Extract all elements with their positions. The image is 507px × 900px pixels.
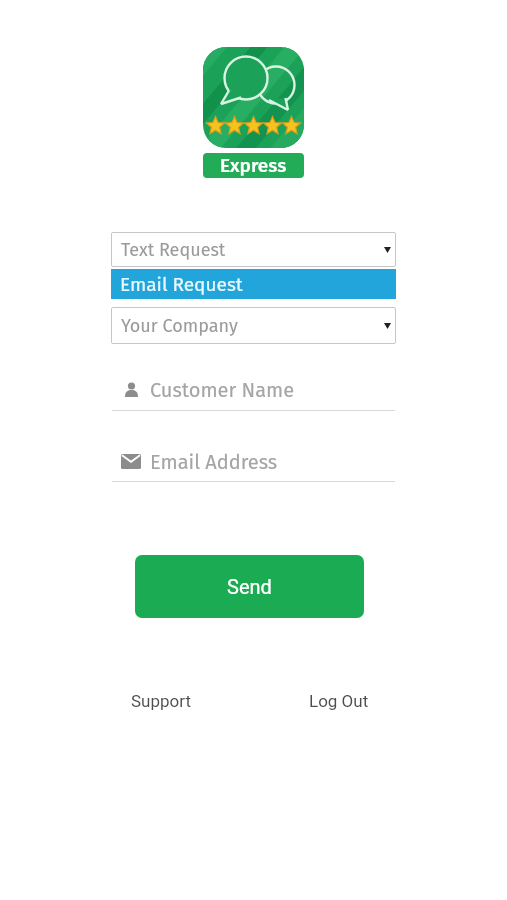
button[interactable]: Customer Name: [112, 370, 395, 411]
button[interactable]: Log Out: [309, 691, 369, 711]
staticText: Send: [227, 575, 272, 598]
button[interactable]: Email Address: [112, 442, 395, 482]
staticText: Express: [220, 154, 287, 177]
button[interactable]: Your Company: [111, 307, 396, 344]
staticText: Text Request: [121, 239, 226, 261]
button[interactable]: Text Request: [111, 232, 396, 267]
staticText: Support: [131, 691, 191, 711]
button[interactable]: Email Request: [111, 269, 396, 299]
staticText: Your Company: [121, 315, 238, 337]
button[interactable]: Support: [131, 691, 191, 711]
staticText: Email Request: [120, 273, 243, 296]
staticText: Email Address: [150, 450, 278, 474]
staticText: Customer Name: [150, 378, 295, 402]
button[interactable]: Send: [135, 555, 364, 618]
staticText: Log Out: [309, 691, 369, 711]
